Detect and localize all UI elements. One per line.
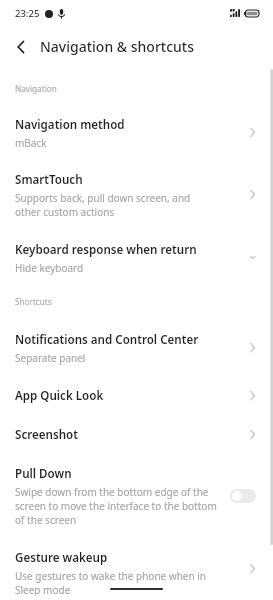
- button[interactable]: SmartTouch: [0, 161, 273, 231]
- staticText: Separate panel: [15, 351, 86, 365]
- staticText: Screenshot: [15, 428, 78, 442]
- staticText: Keyboard response when return: [15, 243, 197, 257]
- button[interactable]: App Quick Look: [0, 377, 273, 416]
- staticText: Navigation method: [15, 118, 125, 132]
- staticText: Use gestures to wake the phone when in S…: [15, 569, 207, 596]
- staticText: Navigation: [15, 83, 57, 94]
- button[interactable]: Back: [9, 36, 31, 58]
- staticText: App Quick Look: [15, 389, 104, 403]
- button[interactable]: Navigation method: [0, 106, 273, 161]
- staticText: Notifications and Control Center: [15, 333, 199, 347]
- button[interactable]: Gesture wakeup: [0, 539, 273, 600]
- button[interactable]: Pull Down: [0, 455, 273, 539]
- staticText: SmartTouch: [15, 173, 83, 187]
- button[interactable]: Keyboard response when return: [0, 231, 273, 288]
- staticText: mBack: [15, 136, 47, 150]
- button[interactable]: Toggle Pull Down: [230, 489, 256, 503]
- staticText: Swipe down from the bottom edge of the s…: [15, 485, 217, 527]
- staticText: Hide keyboard: [15, 261, 84, 275]
- staticText: Pull Down: [15, 467, 72, 481]
- staticText: 23:25: [15, 7, 40, 20]
- staticText: Shortcuts: [15, 296, 52, 307]
- staticText: Navigation & shortcuts: [40, 37, 195, 56]
- staticText: Supports back, pull down screen, and oth…: [15, 191, 191, 219]
- staticText: Gesture wakeup: [15, 551, 108, 565]
- button[interactable]: Screenshot: [0, 416, 273, 455]
- button[interactable]: Notifications and Control Center: [0, 321, 273, 377]
